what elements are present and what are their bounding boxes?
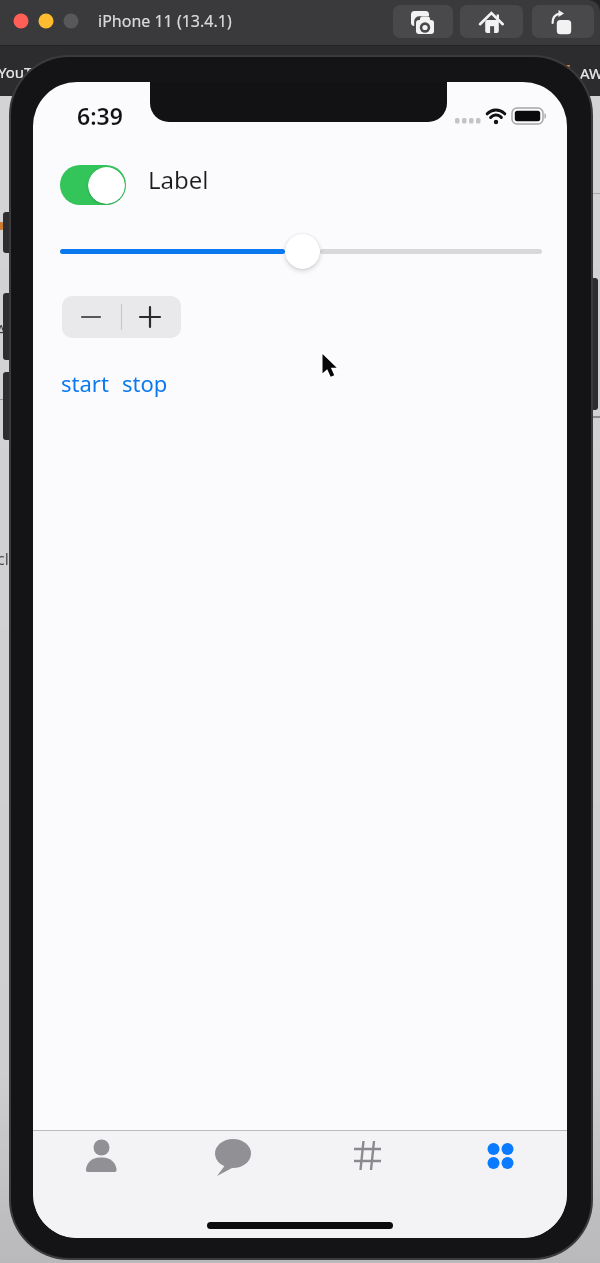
staticText: 6:39 (77, 100, 123, 131)
button[interactable] (168, 1131, 301, 1191)
button[interactable] (35, 1131, 168, 1191)
staticText: AW (580, 63, 600, 83)
button[interactable] (285, 234, 320, 269)
button[interactable]: start (61, 368, 109, 398)
staticText: YouT (0, 62, 33, 82)
button[interactable] (60, 165, 126, 205)
staticText: cl (0, 548, 9, 570)
staticText: iPhone 11 (13.4.1) (98, 10, 232, 32)
button[interactable]: stop (122, 368, 168, 398)
staticText: A (0, 320, 7, 342)
button[interactable] (532, 5, 594, 38)
button[interactable] (301, 1131, 434, 1191)
button[interactable] (393, 5, 453, 38)
button[interactable] (62, 296, 121, 338)
button[interactable] (460, 5, 523, 38)
staticText: Label (148, 163, 209, 196)
button[interactable] (434, 1131, 567, 1191)
button[interactable] (121, 296, 181, 338)
